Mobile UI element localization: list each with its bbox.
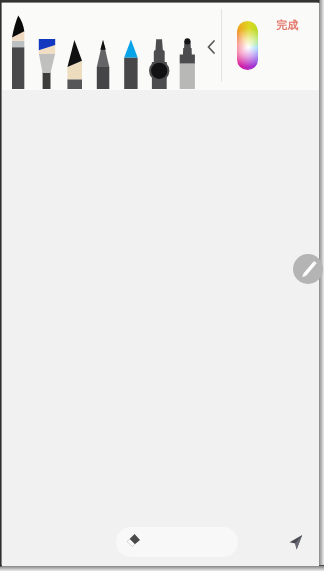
button[interactable]: Colour picker (237, 21, 258, 70)
staticText: 完成 (276, 18, 298, 32)
button[interactable]: Send (288, 534, 306, 550)
button[interactable]: 完成 (276, 18, 298, 32)
button[interactable]: Eraser (124, 532, 143, 549)
button[interactable]: Edit (293, 254, 323, 284)
button[interactable]: Back (200, 32, 224, 60)
